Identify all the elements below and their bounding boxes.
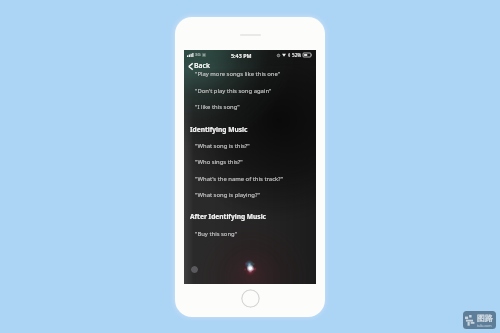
- button[interactable]: "Buy this song": [184, 226, 316, 242]
- staticText: "Play more songs like this one": [195, 70, 281, 78]
- staticText: 图路: [477, 313, 493, 323]
- staticText: "Don't play this song again": [195, 87, 272, 95]
- staticText: 52%: [292, 52, 302, 58]
- staticText: After Identifying Music: [190, 212, 267, 221]
- staticText: "Who sings this?": [195, 158, 243, 166]
- button[interactable]: "What's the name of this track?": [184, 171, 316, 187]
- staticText: tulu.com: [477, 323, 492, 327]
- button[interactable]: Home: [241, 289, 260, 308]
- staticText: "Buy this song": [195, 230, 238, 238]
- button[interactable]: "What song is playing?": [184, 187, 316, 203]
- button[interactable]: "Don't play this song again": [184, 83, 316, 99]
- button[interactable]: "Who sings this?": [184, 154, 316, 170]
- button[interactable]: Help: [191, 266, 198, 273]
- staticText: "What's the name of this track?": [195, 175, 284, 183]
- button[interactable]: "I like this song": [184, 99, 316, 115]
- staticText: 5:43 PM: [231, 52, 252, 59]
- button[interactable]: Back: [184, 60, 316, 72]
- button[interactable]: "Play more songs like this one": [184, 66, 316, 82]
- staticText: "What song is this?": [195, 142, 250, 150]
- staticText: Identifying Music: [190, 125, 248, 134]
- staticText: "What song is playing?": [195, 191, 260, 199]
- button[interactable]: "What song is this?": [184, 138, 316, 154]
- staticText: 3G: [195, 52, 201, 58]
- staticText: "I like this song": [195, 103, 240, 111]
- staticText: Back: [194, 61, 210, 71]
